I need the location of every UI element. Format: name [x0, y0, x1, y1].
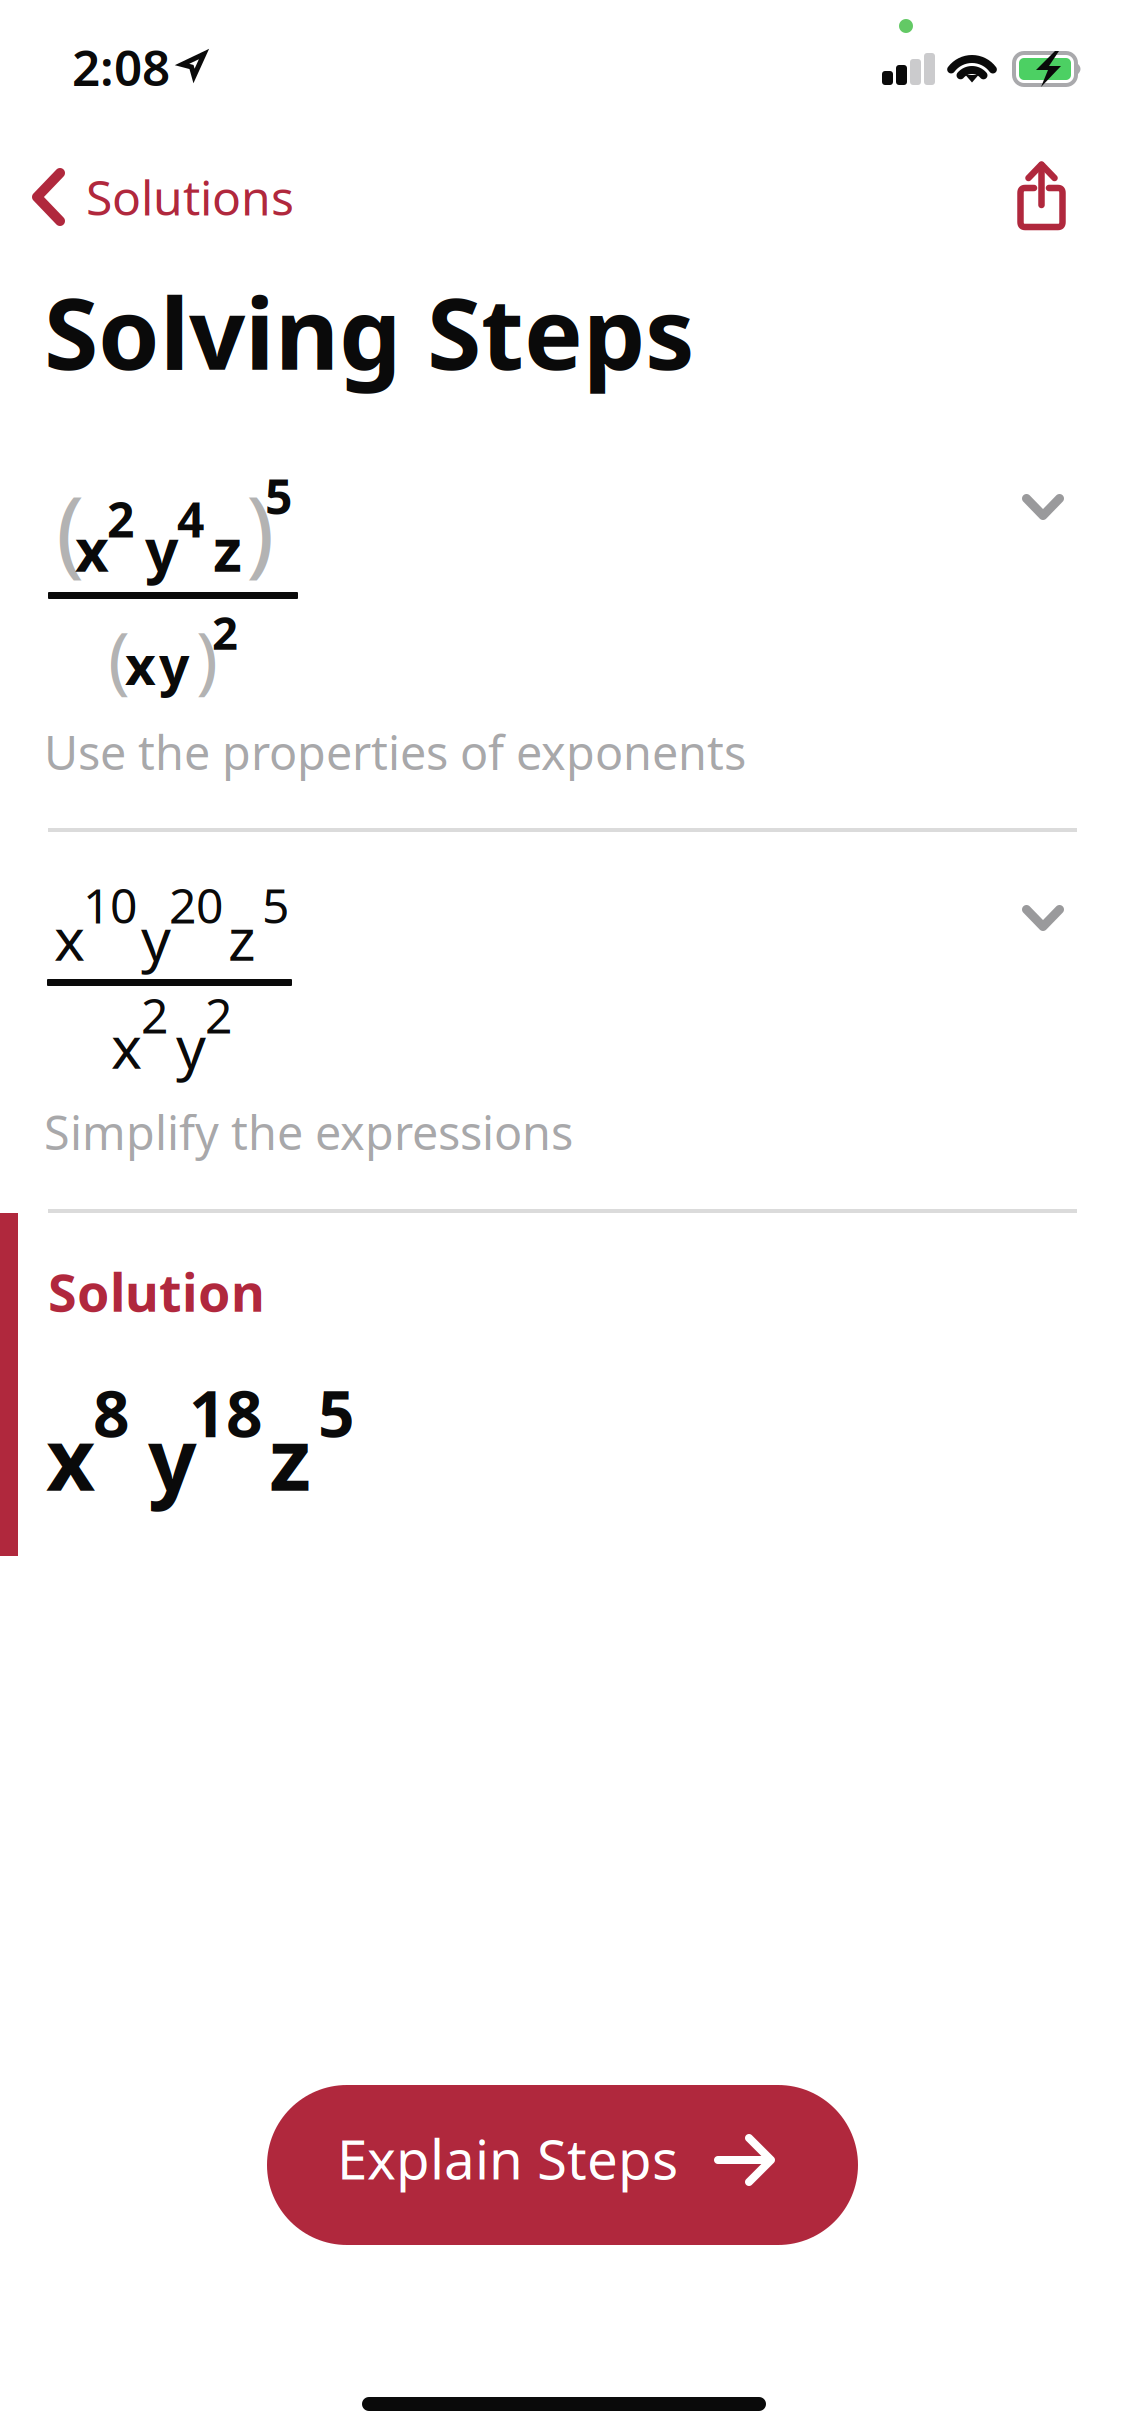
staticText: x	[75, 510, 109, 588]
button[interactable]: Share	[987, 142, 1096, 249]
staticText: 5	[318, 1370, 355, 1455]
staticText: 5	[262, 873, 289, 937]
staticText: y	[148, 1401, 197, 1514]
staticText: 4	[177, 487, 204, 551]
staticText: 5	[265, 464, 292, 528]
staticText: x	[54, 899, 85, 977]
staticText: x	[111, 1007, 142, 1085]
staticText: (	[56, 466, 84, 592]
button[interactable]: Explain Steps	[267, 2085, 858, 2245]
staticText: )	[196, 608, 218, 705]
staticText: y	[145, 510, 178, 588]
staticText: Simplify the expressions	[44, 1101, 573, 1163]
staticText: 18	[189, 1370, 263, 1455]
staticText: 2	[205, 983, 232, 1047]
staticText: y	[176, 1007, 206, 1085]
staticText: (	[108, 608, 130, 705]
button[interactable]: Collapse step	[983, 868, 1103, 968]
staticText: )	[246, 466, 274, 592]
staticText: z	[213, 510, 242, 588]
staticText: z	[228, 899, 256, 977]
staticText: 10	[83, 873, 137, 937]
staticText: 2	[107, 487, 134, 551]
staticText: 2:08	[72, 34, 170, 99]
staticText: Use the properties of exponents	[44, 721, 746, 783]
staticText: 2	[141, 983, 168, 1047]
button[interactable]: Collapse step	[983, 457, 1103, 557]
staticText: 8	[93, 1370, 130, 1455]
staticText: x	[46, 1401, 95, 1514]
staticText: y	[141, 899, 171, 977]
staticText: Solving Steps	[44, 266, 695, 397]
staticText: z	[269, 1401, 311, 1514]
staticText: Solutions	[86, 165, 294, 229]
staticText: 20	[169, 873, 223, 937]
staticText: x	[125, 629, 156, 700]
staticText: Explain Steps	[337, 2122, 678, 2195]
staticText: y	[159, 629, 189, 700]
staticText: Solution	[48, 1257, 265, 1326]
staticText: 2	[212, 602, 238, 662]
button[interactable]: Solutions	[0, 149, 380, 245]
